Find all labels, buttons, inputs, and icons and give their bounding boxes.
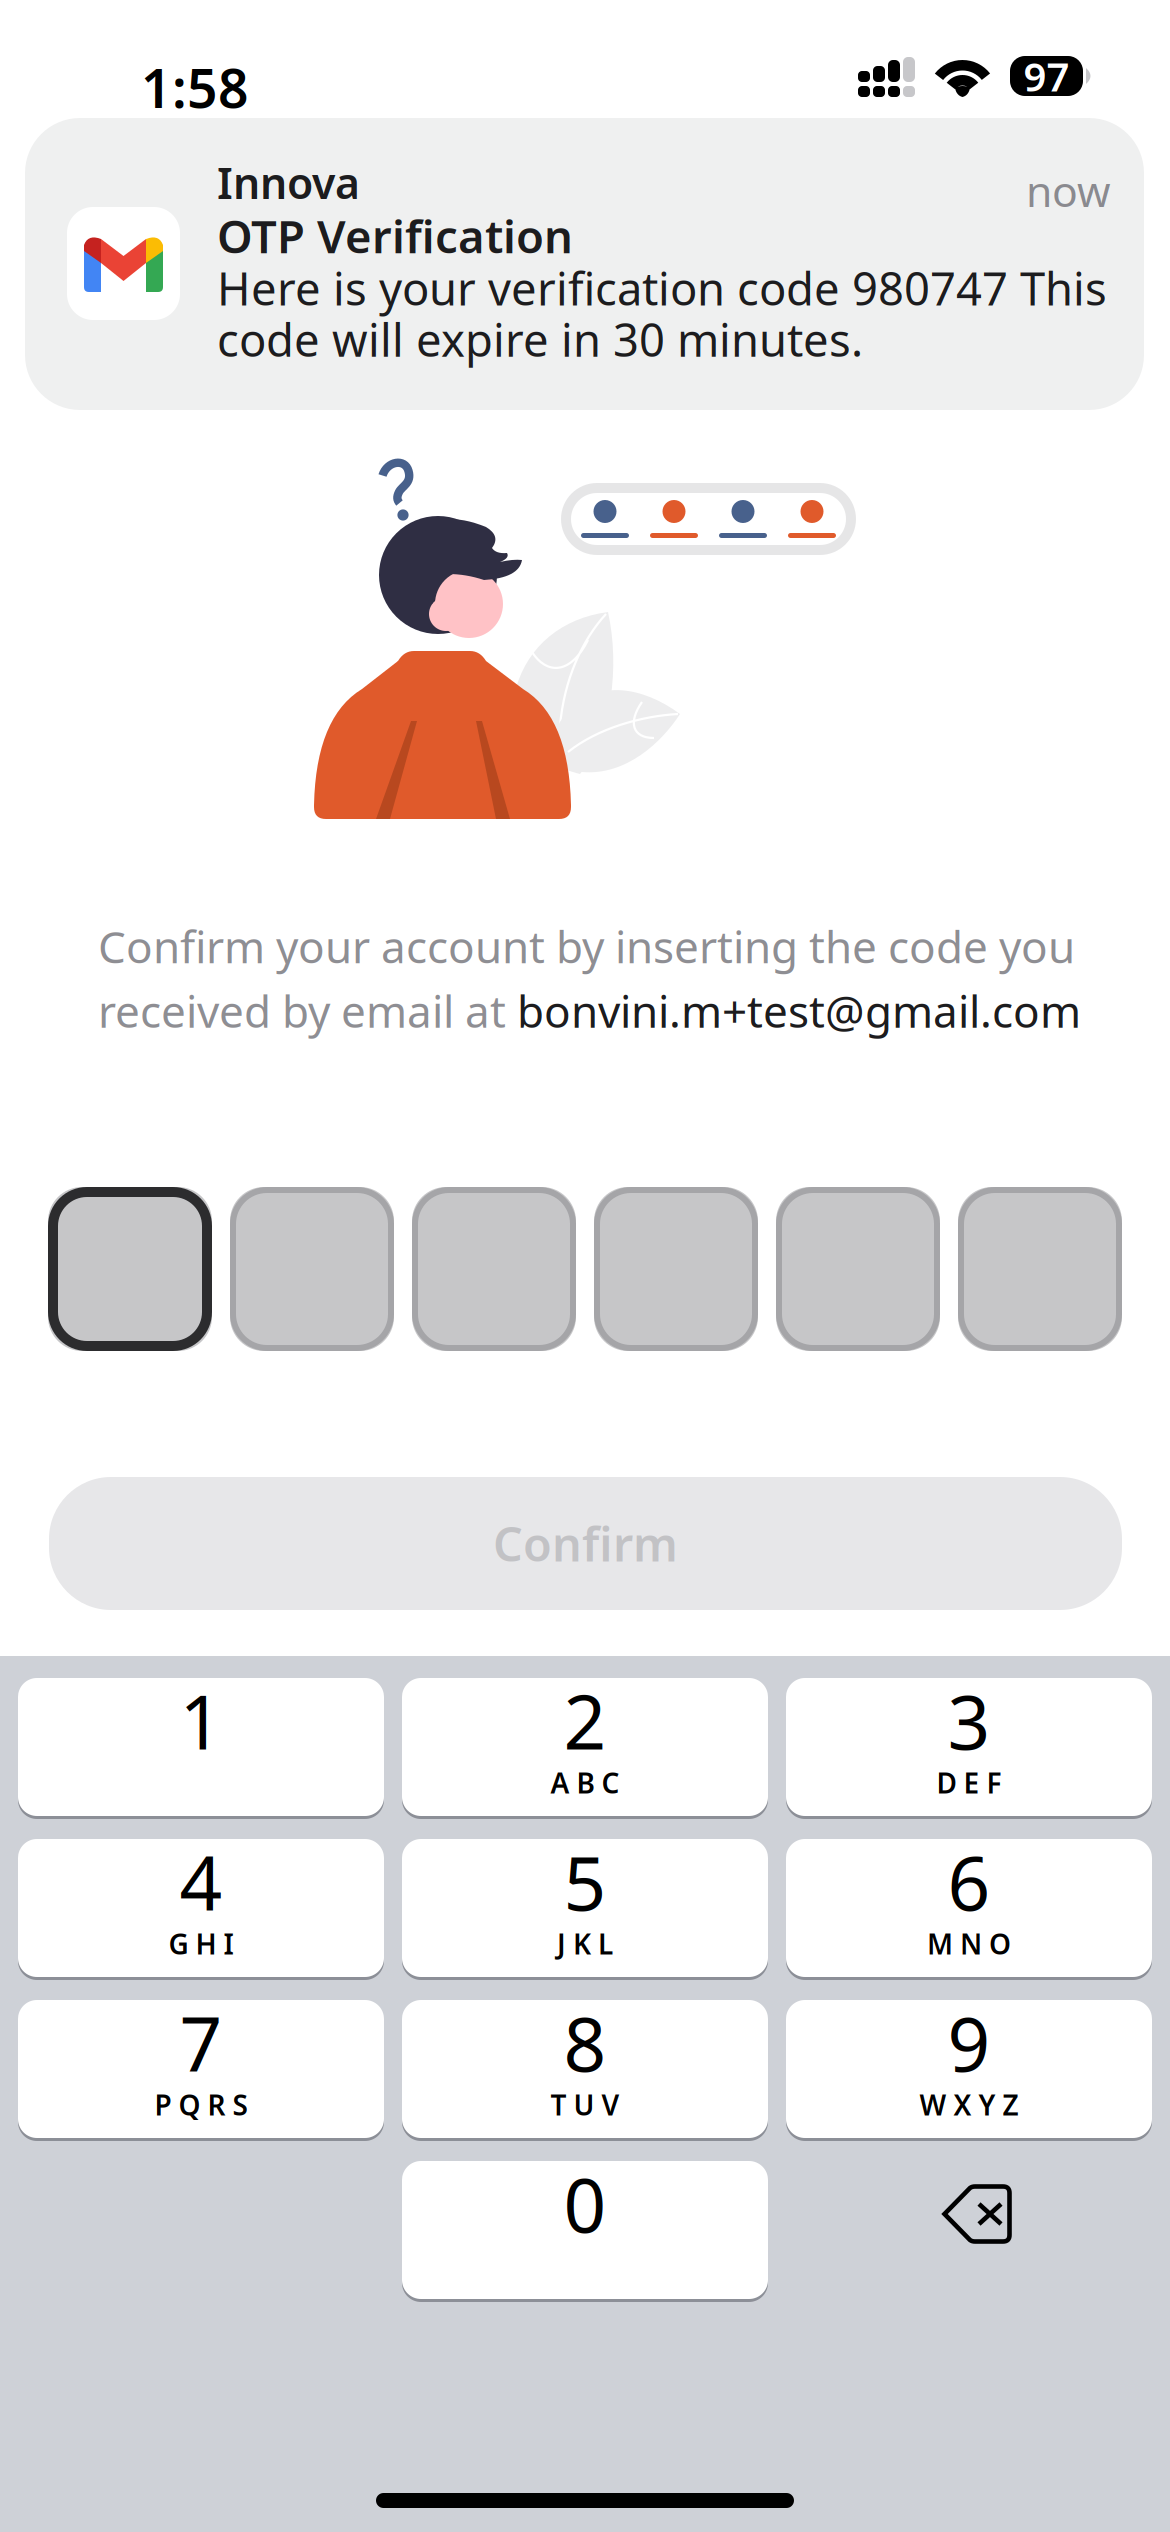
button[interactable]: 4 (18, 1839, 384, 1980)
staticText: 1 (179, 1671, 222, 1770)
staticText: now (1026, 162, 1111, 206)
button[interactable]: 1 (18, 1678, 384, 1819)
button[interactable]: Code digit (230, 1187, 394, 1351)
staticText: 1:58 (141, 52, 249, 96)
button[interactable]: Code digit 1 (48, 1187, 212, 1351)
staticText: 6 (947, 1832, 990, 1931)
staticText: G H I (168, 1925, 233, 1962)
staticText: code will expire in 30 minutes. (217, 309, 863, 369)
button[interactable]: 3 (786, 1678, 1152, 1819)
button[interactable]: Code digit (412, 1187, 576, 1351)
button[interactable]: 0 (402, 2161, 768, 2302)
button[interactable]: 7 (18, 2000, 384, 2141)
staticText: OTP Verification (217, 206, 573, 266)
button[interactable]: Confirm (49, 1477, 1122, 1610)
button[interactable]: Delete (786, 2161, 1152, 2302)
staticText: 2 (563, 1671, 606, 1770)
staticText: 8 (563, 1993, 606, 2092)
staticText: D E F (936, 1764, 1001, 1801)
button[interactable]: Code digit (958, 1187, 1122, 1351)
button[interactable]: 8 (402, 2000, 768, 2141)
button[interactable]: 6 (786, 1839, 1152, 1980)
staticText: Confirm your account by inserting the co… (98, 917, 1075, 975)
staticText: received by email at (98, 981, 517, 1040)
staticText: 4 (179, 1832, 222, 1931)
staticText: 5 (563, 1832, 606, 1931)
staticText: Innova (217, 154, 360, 211)
staticText: 97 (1023, 49, 1069, 102)
button[interactable]: Code digit (776, 1187, 940, 1351)
button[interactable]: 5 (402, 1839, 768, 1980)
button[interactable]: Innova (25, 118, 1144, 410)
staticText: J K L (557, 1925, 613, 1962)
staticText: P Q R S (154, 2086, 247, 2123)
staticText: A B C (550, 1764, 619, 1801)
button[interactable]: Code digit (594, 1187, 758, 1351)
staticText: M N O (927, 1925, 1011, 1962)
button[interactable]: 9 (786, 2000, 1152, 2141)
staticText: 3 (947, 1671, 990, 1770)
staticText: T U V (550, 2086, 619, 2123)
staticText: 7 (179, 1993, 222, 2092)
staticText: bonvini.m+test@gmail.com (517, 981, 1081, 1040)
staticText: W X Y Z (919, 2086, 1018, 2123)
button[interactable]: 2 (402, 1678, 768, 1819)
staticText: Confirm (493, 1512, 678, 1574)
staticText: 0 (563, 2154, 606, 2253)
staticText: Here is your verification code 980747 Th… (217, 258, 1107, 318)
staticText: 9 (947, 1993, 990, 2092)
